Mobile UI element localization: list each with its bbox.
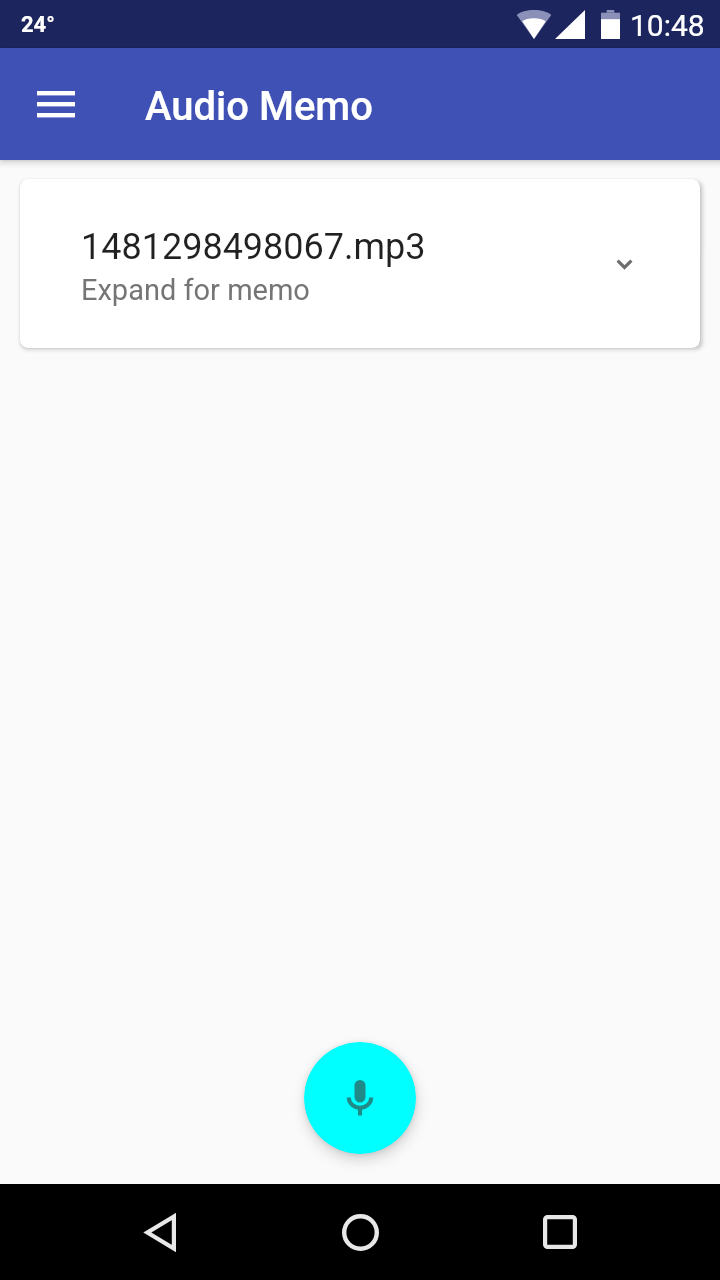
button[interactable]: Expand memo <box>600 240 648 288</box>
staticText: Audio Memo <box>145 83 373 130</box>
staticText: 10:48 <box>630 8 705 43</box>
button[interactable]: Record audio memo <box>304 1042 416 1154</box>
staticText: Expand for memo <box>81 273 310 307</box>
button[interactable]: Open navigation menu <box>24 72 88 136</box>
button[interactable]: Recent apps <box>512 1184 608 1280</box>
button[interactable]: Back <box>112 1184 208 1280</box>
staticText: 1481298498067.mp3 <box>81 226 426 268</box>
button[interactable]: 1481298498067.mp3 <box>20 179 700 348</box>
button[interactable]: Home <box>312 1184 408 1280</box>
staticText: 24° <box>21 12 55 38</box>
